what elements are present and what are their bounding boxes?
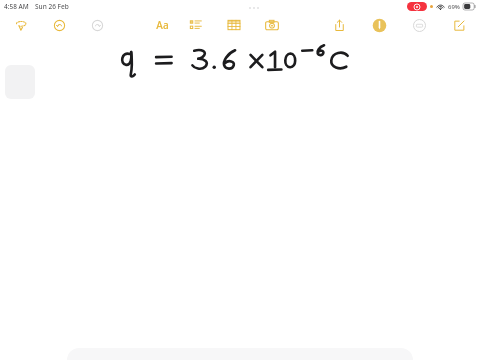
- button[interactable]: Aa: [147, 13, 177, 37]
- staticText: 4:58 AM: [4, 2, 29, 11]
- staticText: Sun 26 Feb: [35, 2, 69, 11]
- button[interactable]: Lasso select: [4, 13, 38, 37]
- button[interactable]: Share: [322, 13, 356, 37]
- button[interactable]: Insert table: [217, 13, 251, 37]
- button[interactable]: Undo: [42, 13, 76, 37]
- button[interactable]: Bulleted list: [179, 13, 213, 37]
- button[interactable]: Eraser: [402, 13, 436, 37]
- button[interactable]: Redo: [80, 13, 114, 37]
- button[interactable]: Highlighter: [362, 13, 396, 37]
- button[interactable]: Camera: [255, 13, 289, 37]
- button[interactable]: Recording: [407, 2, 427, 11]
- staticText: Aa: [156, 18, 169, 32]
- button[interactable]: New note: [442, 13, 476, 37]
- staticText: 69%: [448, 3, 460, 11]
